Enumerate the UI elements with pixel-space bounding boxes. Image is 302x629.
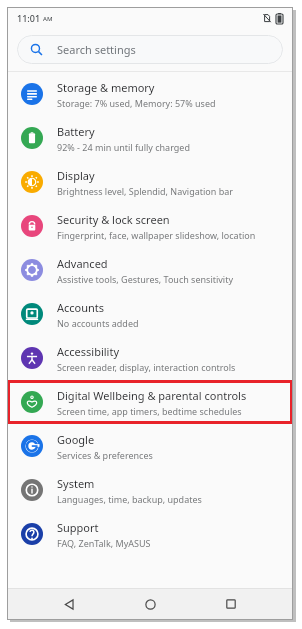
staticText: Screen time, app timers, bedtime schedul…	[57, 405, 242, 417]
staticText: Brightness level, Splendid, Navigation b…	[57, 185, 233, 197]
button[interactable]: Recent apps	[212, 588, 250, 620]
staticText: Storage & memory	[57, 80, 155, 95]
staticText: FAQ, ZenTalk, MyASUS	[57, 537, 151, 549]
button[interactable]: Support	[7, 512, 293, 556]
staticText: Support	[57, 520, 99, 535]
button[interactable]: Accounts	[7, 292, 293, 336]
staticText: Google	[57, 432, 95, 447]
button[interactable]: Back	[50, 588, 88, 620]
staticText: Services & preferences	[57, 449, 153, 461]
other: Search	[30, 43, 43, 56]
button[interactable]: Advanced	[7, 248, 293, 292]
button[interactable]: Search	[17, 35, 283, 64]
staticText: Search settings	[57, 42, 136, 57]
button[interactable]: System	[7, 468, 293, 512]
staticText: Accessibility	[57, 344, 120, 359]
button[interactable]: Digital Wellbeing & parental controls	[7, 380, 293, 424]
staticText: Display	[57, 168, 95, 183]
button[interactable]: Security & lock screen	[7, 204, 293, 248]
staticText: Assistive tools, Gestures, Touch sensiti…	[57, 273, 234, 285]
staticText: 92% - 24 min until fully charged	[57, 141, 190, 153]
button[interactable]: Battery	[7, 116, 293, 160]
staticText: Security & lock screen	[57, 212, 170, 227]
staticText: Digital Wellbeing & parental controls	[57, 388, 247, 403]
button[interactable]: Storage & memory	[7, 72, 293, 116]
staticText: AM	[43, 15, 53, 23]
staticText: No accounts added	[57, 317, 139, 329]
staticText: Accounts	[57, 300, 105, 315]
staticText: Screen reader, display, interaction cont…	[57, 361, 236, 373]
button[interactable]: Display	[7, 160, 293, 204]
staticText: Battery	[57, 124, 95, 139]
staticText: Fingerprint, face, wallpaper slideshow, …	[57, 229, 256, 241]
staticText: Storage: 7% used, Memory: 57% used	[57, 97, 216, 109]
staticText: 11:01	[17, 12, 41, 24]
button[interactable]: Google	[7, 424, 293, 468]
staticText: Languages, time, backup, updates	[57, 493, 202, 505]
button[interactable]: Home	[131, 588, 169, 620]
staticText: Advanced	[57, 256, 108, 271]
button[interactable]: Accessibility	[7, 336, 293, 380]
staticText: System	[57, 476, 95, 491]
